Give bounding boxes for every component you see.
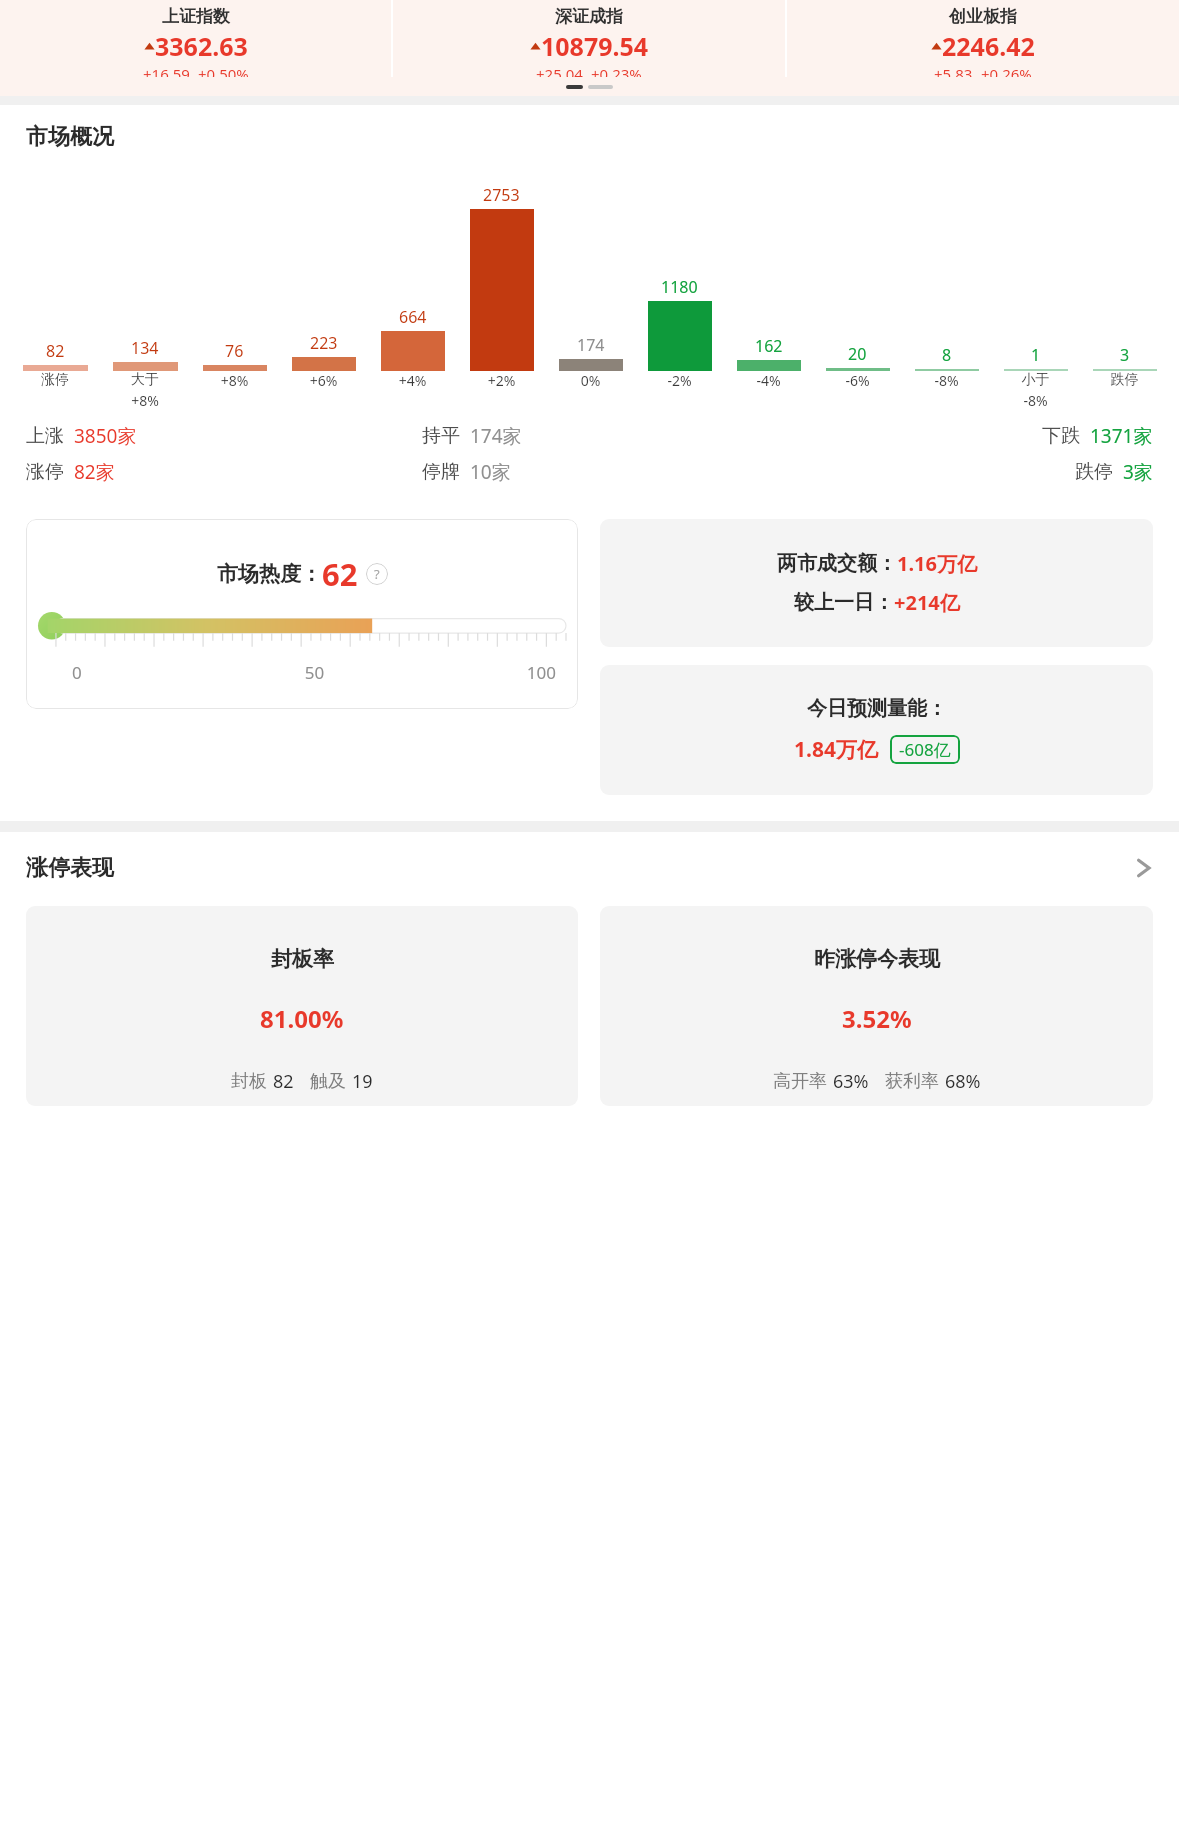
- staticText: 昨涨停今表现: [814, 946, 940, 972]
- button[interactable]: 涨停表现: [0, 850, 1179, 886]
- other: 更多: [1135, 854, 1153, 882]
- staticText: 82: [46, 340, 65, 362]
- staticText: -608亿: [899, 738, 951, 761]
- staticText: +0.23%: [591, 64, 642, 77]
- staticText: 63%: [833, 1069, 869, 1094]
- button[interactable]: 上证指数: [0, 0, 391, 77]
- staticText: 2246.42: [942, 29, 1035, 63]
- staticText: 上证指数: [162, 6, 230, 27]
- staticText: 664: [399, 306, 427, 328]
- button[interactable]: 两市成交额：: [600, 519, 1153, 647]
- button[interactable]: 昨涨停今表现: [600, 906, 1153, 1106]
- staticText: 68%: [945, 1069, 981, 1094]
- staticText: -6%: [813, 371, 902, 390]
- button[interactable]: 市场热度：: [26, 519, 578, 709]
- staticText: 3362.63: [155, 29, 248, 63]
- staticText: 82: [273, 1069, 294, 1094]
- staticText: 获利率: [885, 1070, 939, 1093]
- button[interactable]: 今日预测量能：: [600, 665, 1153, 795]
- staticText: 1.16万亿: [897, 550, 977, 577]
- staticText: 174家: [470, 423, 522, 449]
- staticText: 涨停: [10, 371, 100, 389]
- staticText: 涨停: [26, 460, 64, 484]
- staticText: 3850家: [74, 423, 137, 449]
- staticText: -4%: [724, 371, 813, 390]
- staticText: 上涨: [26, 424, 64, 448]
- staticText: 今日预测量能：: [807, 696, 947, 721]
- staticText: +5.83: [934, 64, 973, 77]
- staticText: 82家: [74, 459, 115, 485]
- staticText: 0: [72, 661, 234, 684]
- staticText: 大于 +8%: [100, 371, 190, 410]
- staticText: 封板率: [271, 946, 334, 972]
- staticText: 8: [942, 344, 952, 366]
- staticText: 100: [395, 661, 556, 684]
- staticText: 3: [1120, 344, 1130, 366]
- staticText: 19: [352, 1069, 373, 1094]
- staticText: -8%: [902, 371, 991, 390]
- staticText: 触及: [310, 1070, 346, 1093]
- staticText: 2753: [483, 184, 520, 206]
- staticText: +0.26%: [981, 64, 1032, 77]
- staticText: 跌停: [1075, 460, 1113, 484]
- staticText: 81.00%: [260, 1002, 344, 1035]
- staticText: 223: [310, 332, 338, 354]
- staticText: 50: [234, 661, 395, 684]
- staticText: 1: [1031, 344, 1041, 366]
- staticText: +8%: [190, 371, 279, 390]
- button[interactable]: 封板率: [26, 906, 578, 1106]
- staticText: 162: [755, 335, 783, 357]
- staticText: 两市成交额：: [777, 551, 897, 576]
- staticText: 持平: [422, 424, 460, 448]
- staticText: 市场概况: [26, 123, 114, 151]
- staticText: 1180: [661, 276, 698, 298]
- staticText: 小于 -8%: [991, 371, 1080, 410]
- staticText: 市场热度：: [217, 561, 322, 587]
- staticText: 高开率: [773, 1070, 827, 1093]
- staticText: 下跌: [1042, 424, 1080, 448]
- staticText: +16.59: [143, 64, 190, 77]
- staticText: 封板: [231, 1070, 267, 1093]
- staticText: 134: [131, 337, 159, 359]
- button[interactable]: 深证成指: [393, 0, 785, 77]
- staticText: 0%: [546, 371, 635, 390]
- staticText: 停牌: [422, 460, 460, 484]
- staticText: 较上一日：: [794, 590, 894, 615]
- staticText: 涨停表现: [26, 854, 114, 882]
- button[interactable]: 帮助说明: [366, 563, 388, 585]
- staticText: ?: [374, 565, 380, 583]
- staticText: +25.04: [536, 64, 583, 77]
- staticText: +4%: [368, 371, 457, 390]
- staticText: 10家: [470, 459, 511, 485]
- staticText: +6%: [279, 371, 368, 390]
- staticText: +214亿: [894, 589, 960, 616]
- staticText: +2%: [457, 371, 546, 390]
- staticText: -2%: [635, 371, 724, 390]
- staticText: +0.50%: [198, 64, 249, 77]
- staticText: 跌停: [1080, 371, 1169, 389]
- staticText: 1371家: [1090, 423, 1153, 449]
- staticText: 20: [848, 343, 867, 365]
- staticText: 76: [225, 340, 244, 362]
- staticText: 174: [577, 334, 605, 356]
- staticText: 深证成指: [555, 6, 623, 27]
- staticText: 3.52%: [842, 1002, 912, 1035]
- button[interactable]: 创业板指: [787, 0, 1179, 77]
- staticText: 62: [322, 553, 358, 595]
- staticText: 3家: [1123, 459, 1153, 485]
- staticText: 10879.54: [541, 29, 649, 63]
- staticText: 1.84万亿: [794, 735, 878, 764]
- staticText: 创业板指: [949, 6, 1017, 27]
